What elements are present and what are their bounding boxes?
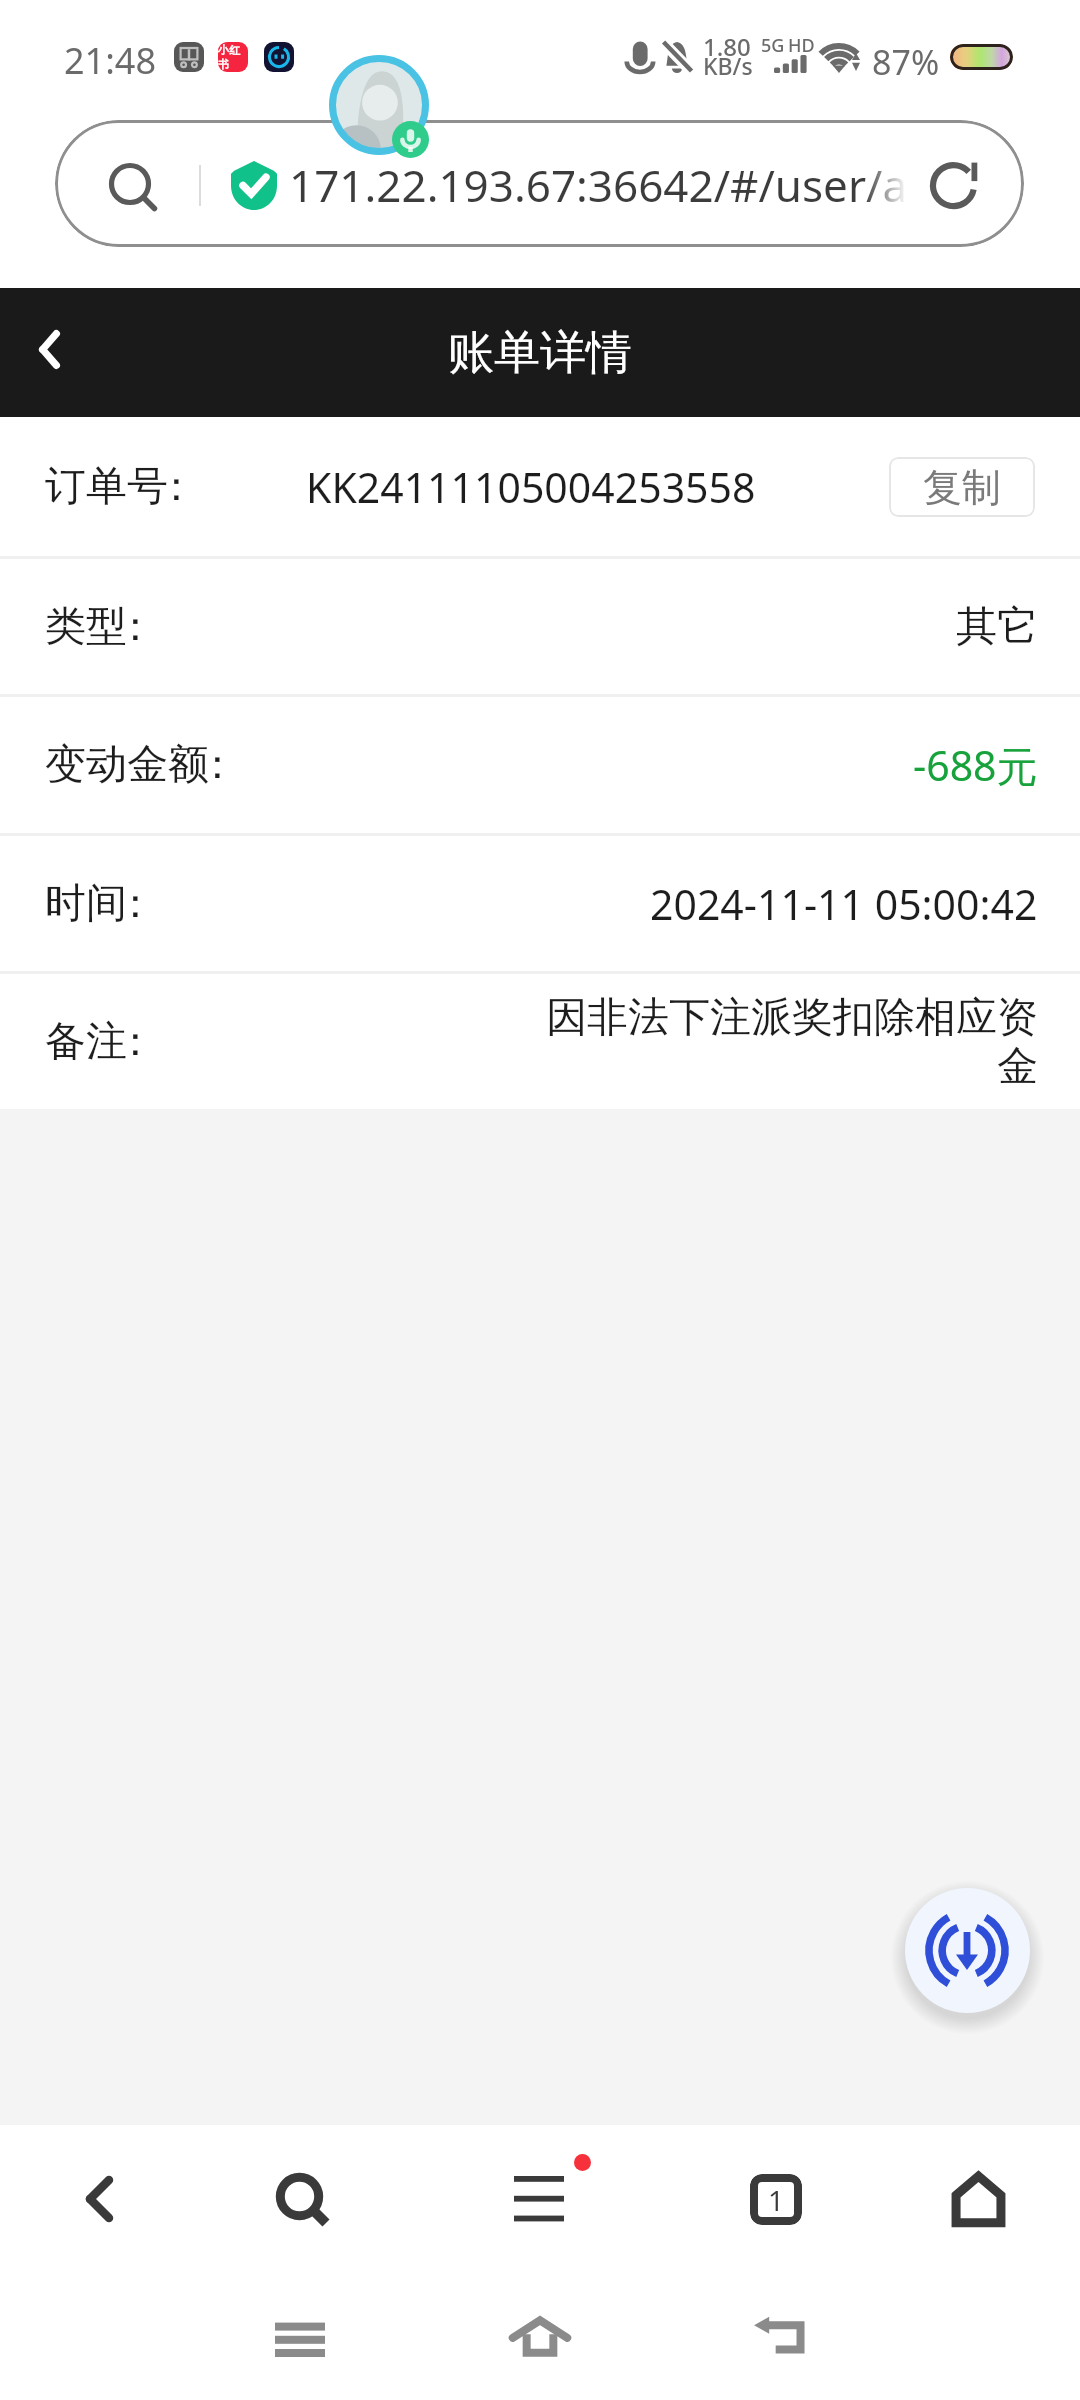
staticText: ： xyxy=(115,601,156,653)
button[interactable]: 变动金额 xyxy=(0,697,1080,833)
staticText: 171.22.193.67:36642/#/user/a xyxy=(289,155,907,215)
staticText: 变动金额 xyxy=(45,739,209,791)
staticText: 2024-11-11 05:00:42 xyxy=(650,876,1038,932)
button[interactable]: 时间 xyxy=(0,836,1080,971)
staticText: ： xyxy=(156,461,197,513)
button[interactable]: Voice assistant xyxy=(329,55,429,155)
staticText: 类型 xyxy=(45,601,127,653)
staticText: 因非法下注派奖扣除相应资金 xyxy=(546,992,1038,1092)
staticText: KK24111105004253558 xyxy=(306,459,756,515)
staticText: KB/s xyxy=(703,50,753,81)
staticText: 1 xyxy=(768,2181,785,2219)
staticText: ： xyxy=(197,739,238,791)
button[interactable]: Back xyxy=(725,2282,835,2392)
button[interactable]: 订单号 xyxy=(0,417,1080,556)
button[interactable]: Recent apps xyxy=(245,2282,355,2392)
button[interactable]: Home xyxy=(923,2144,1033,2254)
staticText: 21:48 xyxy=(64,36,157,85)
button[interactable]: Menu xyxy=(484,2144,594,2254)
staticText: 其它 xyxy=(956,601,1038,653)
staticText: 账单详情 xyxy=(448,324,632,382)
button[interactable]: Back xyxy=(0,294,98,404)
button[interactable]: Tabs xyxy=(721,2144,831,2254)
button[interactable]: Home xyxy=(485,2282,595,2392)
button[interactable]: 类型 xyxy=(0,559,1080,694)
staticText: ： xyxy=(115,878,156,930)
staticText: 复制 xyxy=(923,463,1001,512)
staticText: -688元 xyxy=(913,737,1038,793)
staticText: 5G xyxy=(761,33,785,58)
button[interactable]: Back xyxy=(44,2144,154,2254)
button[interactable]: Search xyxy=(247,2144,357,2254)
staticText: 订单号 xyxy=(45,461,168,513)
staticText: 小红书 xyxy=(218,43,248,71)
staticText: 87% xyxy=(872,39,940,85)
staticText: 备注 xyxy=(45,1016,127,1068)
staticText: HD xyxy=(788,33,815,58)
staticText: ： xyxy=(115,1016,156,1068)
staticText: 时间 xyxy=(45,878,127,930)
button[interactable]: 备注 xyxy=(0,974,1080,1109)
button[interactable]: 复制 xyxy=(889,457,1035,517)
staticText: 1.80 xyxy=(703,30,751,63)
button[interactable]: Download xyxy=(905,1888,1030,2013)
button[interactable]: 171.22.193.67:36642/#/user/a xyxy=(55,120,1024,247)
